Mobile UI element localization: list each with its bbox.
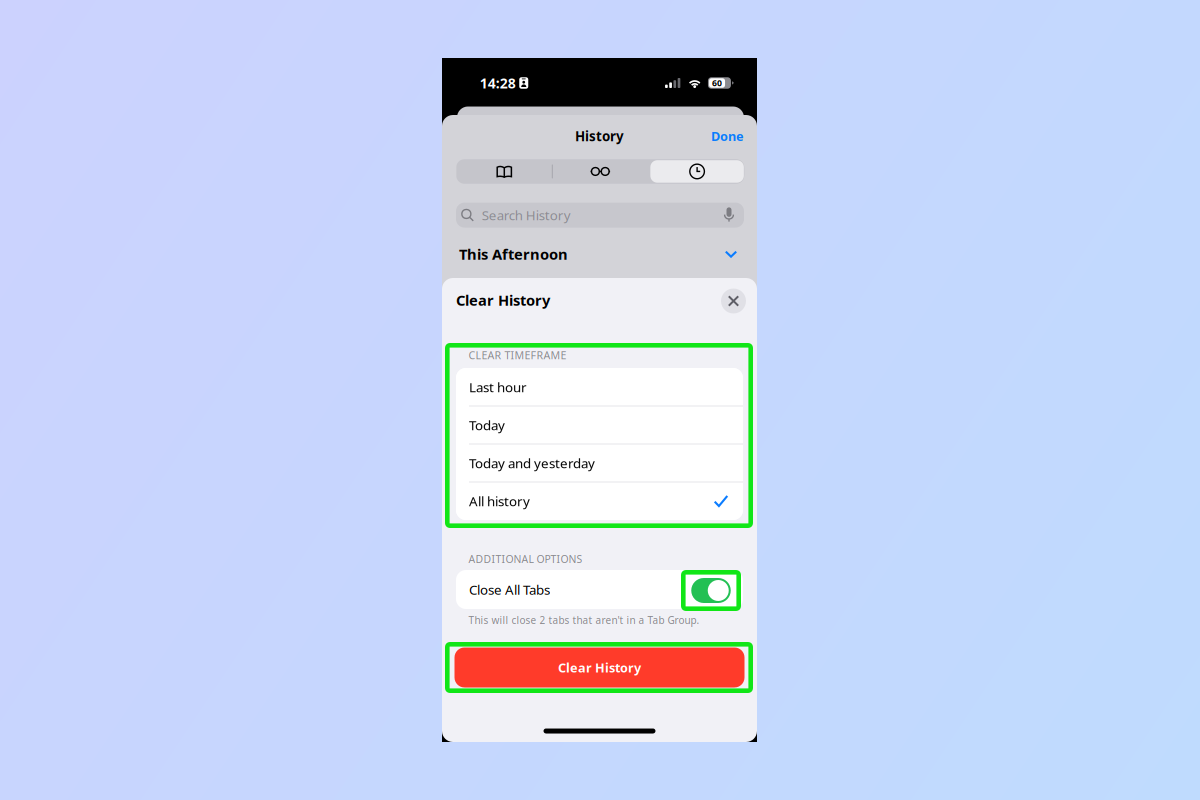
button[interactable]: All history bbox=[456, 482, 743, 520]
button[interactable]: Close All Tabs bbox=[456, 570, 743, 609]
staticText: Today and yesterday bbox=[469, 454, 595, 472]
staticText: Search History bbox=[482, 206, 571, 224]
staticText: Clear History bbox=[456, 290, 550, 310]
button[interactable]: Reading List bbox=[552, 159, 648, 184]
staticText: Today bbox=[469, 416, 505, 434]
button[interactable]: Bookmarks bbox=[456, 159, 552, 184]
staticText: All history bbox=[469, 492, 530, 510]
staticText: Clear History bbox=[558, 659, 641, 676]
button[interactable]: Clear History bbox=[454, 647, 744, 687]
button[interactable]: Today bbox=[456, 406, 743, 444]
staticText: Close All Tabs bbox=[469, 580, 550, 599]
staticText: Last hour bbox=[469, 378, 527, 396]
button[interactable]: Collapse section bbox=[720, 243, 742, 265]
staticText: History bbox=[575, 127, 624, 145]
button[interactable]: History bbox=[650, 160, 744, 183]
staticText: 14:28 bbox=[480, 73, 516, 93]
button[interactable]: Close bbox=[721, 288, 746, 313]
staticText: ADDITIONAL OPTIONS bbox=[468, 552, 582, 566]
staticText: CLEAR TIMEFRAME bbox=[468, 348, 566, 362]
button[interactable]: Done bbox=[680, 124, 744, 148]
staticText: This will close 2 tabs that aren't in a … bbox=[468, 613, 699, 627]
button[interactable]: Today and yesterday bbox=[456, 444, 743, 482]
button[interactable]: Last hour bbox=[456, 368, 743, 406]
staticText: 60 bbox=[712, 77, 722, 89]
staticText: This Afternoon bbox=[459, 244, 568, 264]
staticText: Done bbox=[711, 127, 744, 145]
